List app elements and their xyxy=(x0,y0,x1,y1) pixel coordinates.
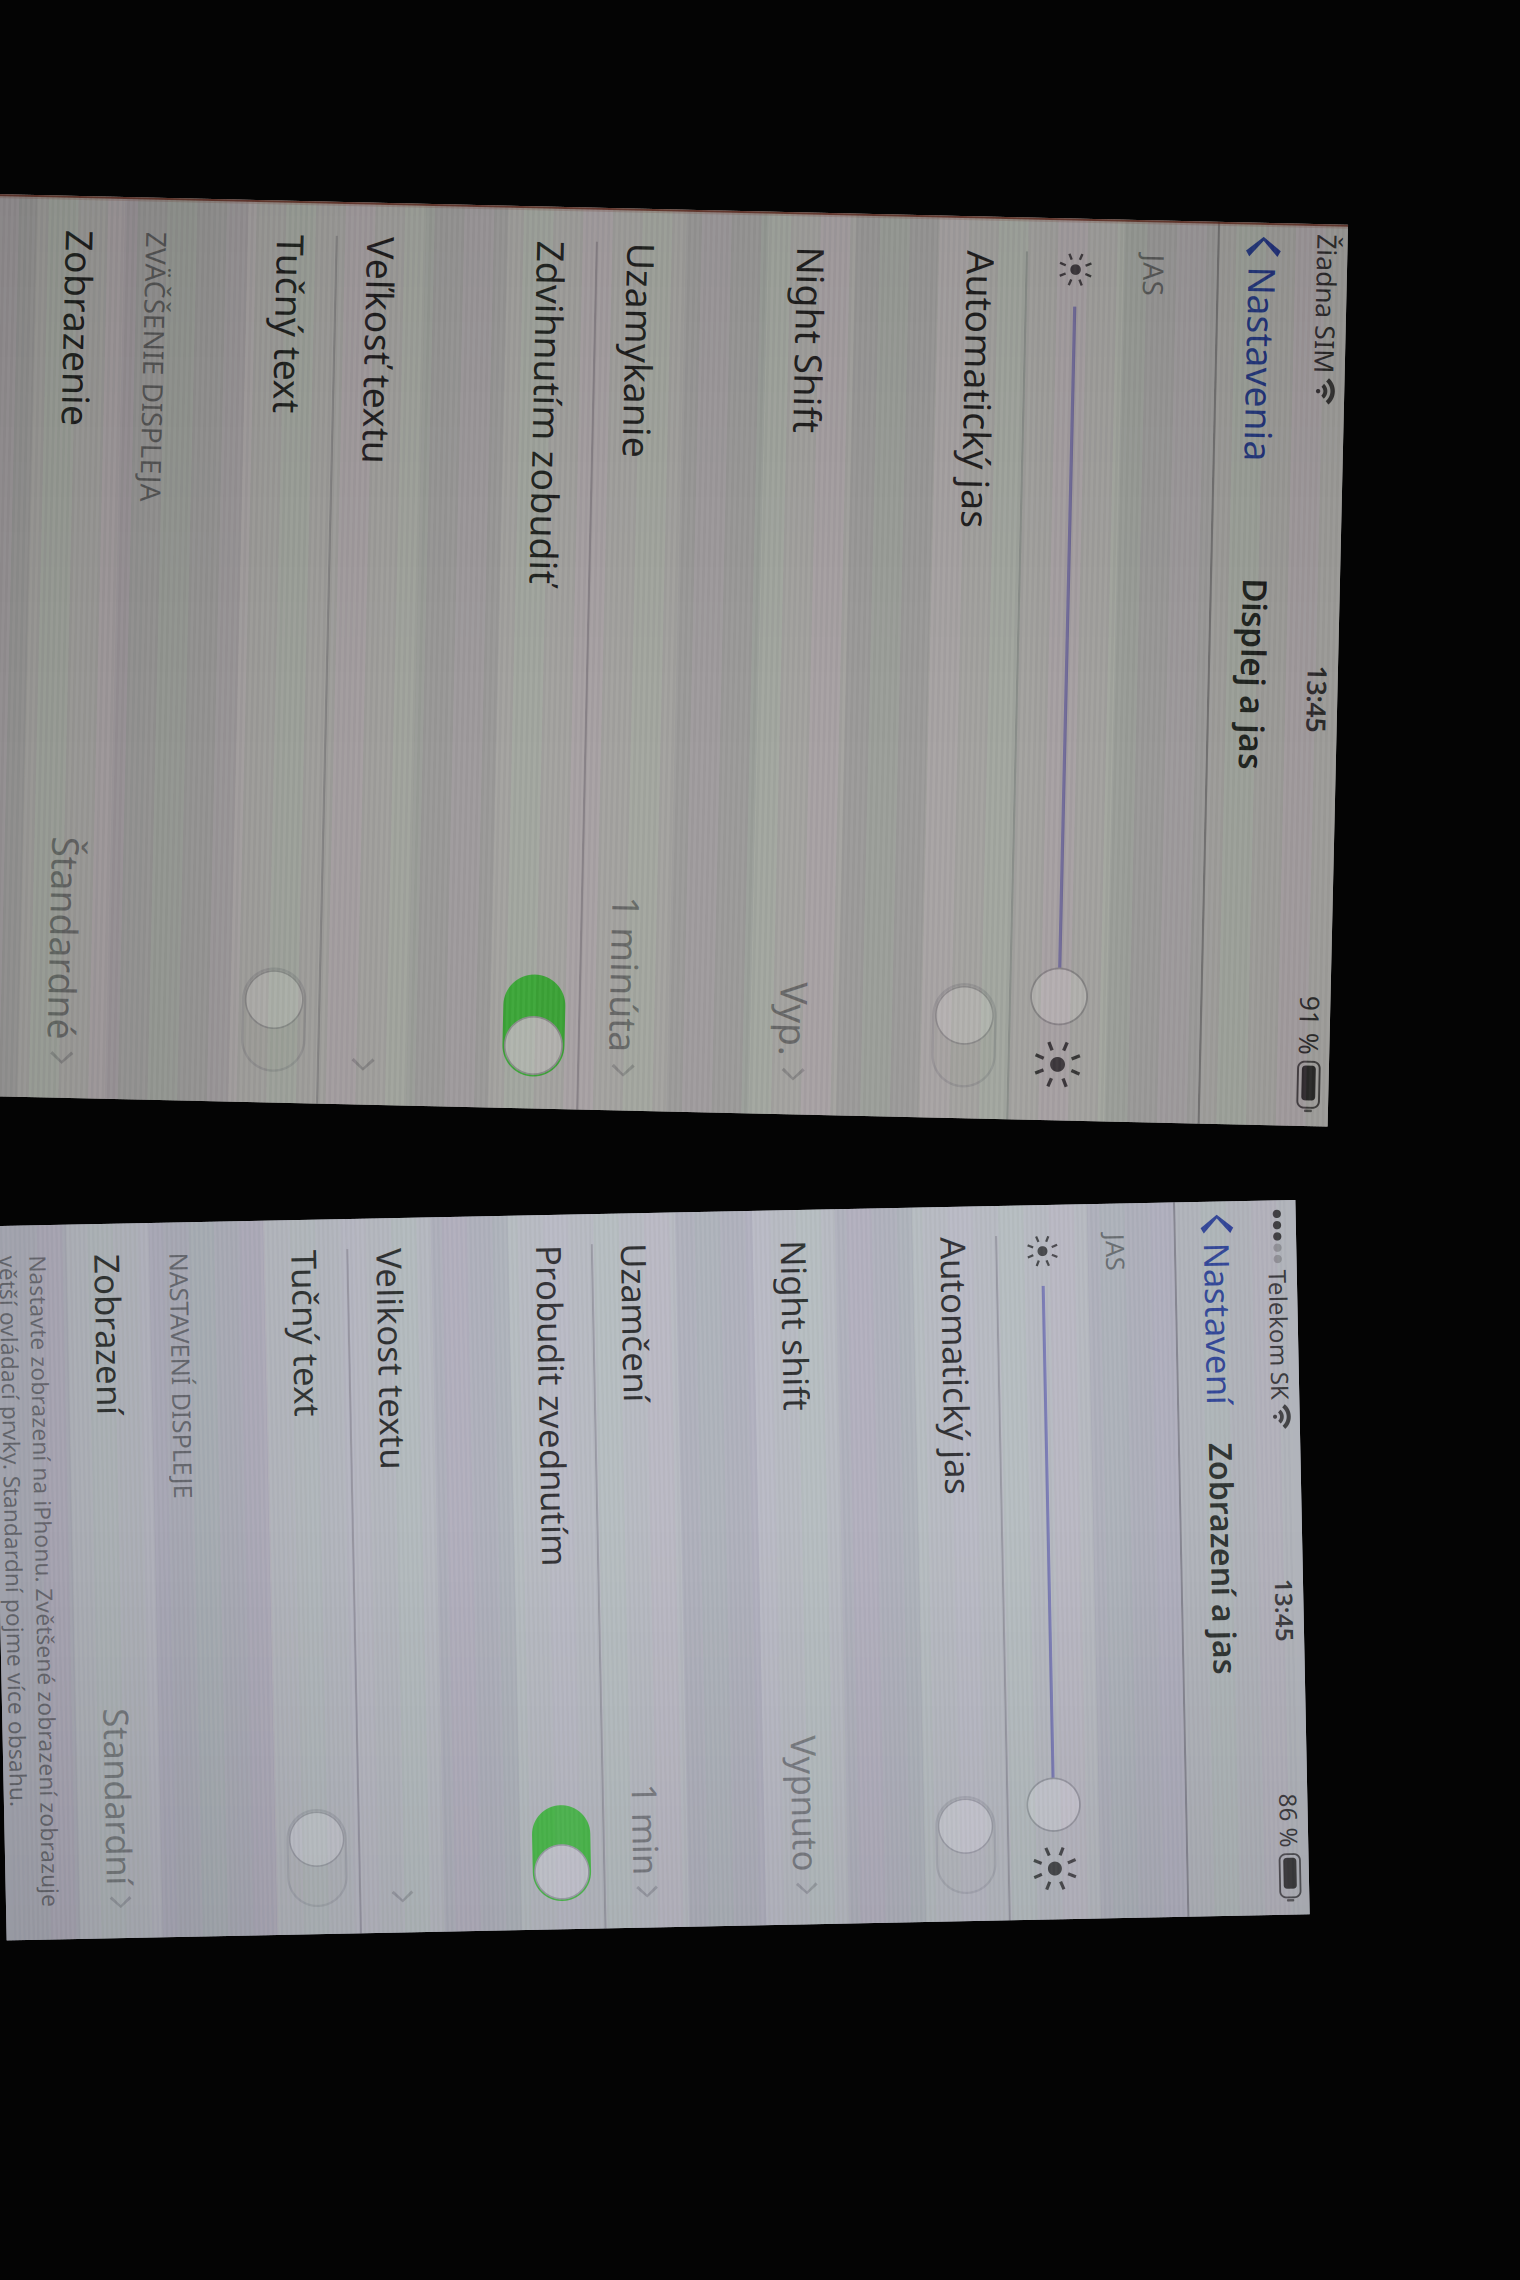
staticText: Automatický jas xyxy=(186,265,464,314)
staticText: Telekom SK xyxy=(363,921,493,953)
button[interactable]: Uzamykanie xyxy=(152,586,1054,674)
button[interactable]: Veľkosť textu xyxy=(152,846,1054,934)
staticText: Vypnuto xyxy=(819,1398,955,1444)
staticText: Štandardné xyxy=(793,1166,996,1216)
staticText: Tučný text xyxy=(324,1887,491,1933)
button[interactable]: Brightness xyxy=(152,147,1054,243)
staticText: Night Shift xyxy=(186,435,372,484)
button[interactable]: Automatický jas xyxy=(294,1220,1008,1302)
button[interactable]: Probudit zvednutím xyxy=(294,1624,1008,1707)
button[interactable]: Uzamčení xyxy=(294,1539,1008,1622)
button[interactable]: Automatický jas xyxy=(152,246,1054,334)
staticText: 13:45 xyxy=(672,921,735,953)
button[interactable]: Nastavení xyxy=(294,956,497,1039)
staticText: Nastavení xyxy=(335,974,497,1020)
staticText: Zdvihnutím zobudiť xyxy=(186,695,529,745)
button[interactable]: Zdvihnutím zobudiť xyxy=(152,676,1054,764)
staticText: Veľkosť textu xyxy=(186,865,413,915)
staticText: Tučný text xyxy=(186,955,364,1005)
button[interactable]: Tučný text xyxy=(152,936,1054,1024)
staticText: JAS xyxy=(324,1082,361,1116)
staticText: Night shift xyxy=(324,1398,495,1444)
button[interactable]: Velikost textu xyxy=(294,1784,1008,1866)
staticText: Vyp. xyxy=(922,435,996,484)
staticText: 1 min xyxy=(864,1557,955,1603)
staticText: Uzamčení xyxy=(324,1557,483,1603)
button[interactable]: Brightness xyxy=(294,1127,1008,1217)
button[interactable]: Zobrazenie xyxy=(152,1147,1054,1235)
staticText: Probudit zvednutím xyxy=(324,1642,645,1688)
staticText: 86 % xyxy=(887,921,941,953)
staticText: Velikost textu xyxy=(324,1802,545,1848)
button[interactable]: Night shift xyxy=(294,1379,1008,1462)
staticText: Uzamykanie xyxy=(186,605,401,654)
staticText: Automatický jas xyxy=(324,1238,582,1284)
button[interactable]: Night Shift xyxy=(152,416,1054,504)
staticText: ZVÄČŠENIE DISPLEJA xyxy=(186,1096,456,1133)
staticText: 1 minúta xyxy=(840,605,996,654)
staticText: Zobrazení a jas xyxy=(535,976,767,1019)
button[interactable]: Tučný text xyxy=(294,1868,1008,1951)
